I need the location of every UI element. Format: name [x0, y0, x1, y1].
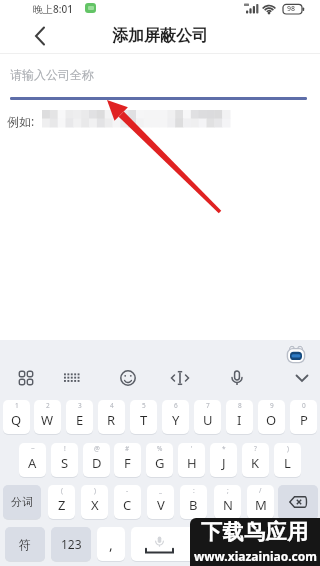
button[interactable]: @	[83, 443, 110, 477]
staticText: ?	[254, 444, 257, 453]
staticText: E	[76, 411, 84, 429]
staticText: :	[193, 486, 195, 495]
staticText: 6	[174, 401, 178, 410]
button[interactable]: :	[180, 485, 207, 519]
staticText: 0	[302, 401, 306, 410]
button[interactable]	[131, 527, 259, 561]
staticText: *	[222, 444, 226, 453]
staticText: A	[28, 454, 37, 472]
staticText: G	[155, 454, 165, 472]
staticText: -	[126, 486, 129, 495]
button[interactable]: 123	[51, 527, 91, 561]
button[interactable]: 3	[66, 400, 93, 434]
staticText: M	[255, 496, 267, 514]
staticText: 下载鸟应用	[201, 519, 309, 545]
button[interactable]	[10, 97, 307, 100]
staticText: '	[191, 444, 193, 453]
button[interactable]: %	[146, 443, 173, 477]
staticText: B	[189, 496, 198, 514]
button[interactable]: ;	[214, 485, 241, 519]
staticText: 5	[142, 401, 146, 410]
button[interactable]: (	[48, 485, 75, 519]
button[interactable]: ~	[19, 443, 46, 477]
button[interactable]: ?	[242, 443, 269, 477]
staticText: 3	[78, 401, 82, 410]
button[interactable]: 下载鸟应用	[190, 518, 320, 566]
staticText: Y	[172, 411, 180, 429]
button[interactable]: 1	[3, 400, 30, 434]
button[interactable]: )	[81, 485, 108, 519]
staticText: 请输入公司全称	[10, 67, 94, 82]
button[interactable]: ,	[97, 527, 125, 561]
staticText: K	[251, 454, 260, 472]
staticText: 2	[46, 401, 50, 410]
button[interactable]: 6	[162, 400, 189, 434]
staticText: P	[300, 411, 308, 429]
staticText: Z	[58, 496, 66, 514]
staticText: /	[259, 486, 262, 495]
staticText: 分词	[11, 495, 33, 509]
staticText: W	[41, 411, 54, 429]
staticText: 添加屏蔽公司	[112, 26, 208, 46]
staticText: 4	[110, 401, 114, 410]
staticText: #	[125, 444, 130, 453]
staticText: J	[222, 454, 226, 472]
staticText: www.xiazainiao.com	[194, 548, 317, 564]
button[interactable]: 2	[34, 400, 61, 434]
button[interactable]: _	[147, 485, 174, 519]
staticText: Q	[11, 411, 22, 429]
button[interactable]: )	[274, 443, 301, 477]
staticText: 123	[61, 536, 82, 552]
button[interactable]	[278, 485, 318, 519]
staticText: )	[287, 444, 289, 453]
staticText: _	[159, 486, 162, 495]
staticText: O	[266, 411, 277, 429]
staticText: T	[140, 411, 148, 429]
button[interactable]	[28, 24, 52, 48]
staticText: %	[157, 444, 163, 453]
staticText: H	[187, 454, 197, 472]
staticText: 8	[238, 401, 242, 410]
staticText: !	[64, 444, 66, 453]
button[interactable]: 0	[290, 400, 317, 434]
button[interactable]: -	[114, 485, 141, 519]
staticText: @	[94, 444, 100, 453]
staticText: 7	[206, 401, 210, 410]
staticText: F	[124, 454, 131, 472]
staticText: U	[203, 411, 213, 429]
staticText: I	[237, 411, 242, 429]
button[interactable]: 符	[5, 527, 45, 561]
button[interactable]: 9	[258, 400, 285, 434]
button[interactable]: 分词	[3, 485, 41, 519]
staticText: L	[284, 454, 291, 472]
staticText: X	[91, 496, 99, 514]
button[interactable]	[265, 527, 318, 561]
button[interactable]: *	[210, 443, 237, 477]
staticText: C	[123, 496, 132, 514]
staticText: ,	[109, 535, 113, 554]
staticText: N	[223, 496, 233, 514]
staticText: 1	[15, 401, 19, 410]
button[interactable]: #	[114, 443, 141, 477]
staticText: 98	[287, 4, 296, 14]
staticText: R	[107, 411, 116, 429]
staticText: S	[61, 454, 69, 472]
button[interactable]: '	[178, 443, 205, 477]
button[interactable]: 8	[226, 400, 253, 434]
staticText: D	[92, 454, 102, 472]
staticText: 晚上8:01	[33, 2, 73, 16]
staticText: V	[157, 496, 165, 514]
button[interactable]: 7	[194, 400, 221, 434]
button[interactable]: 4	[98, 400, 125, 434]
staticText: (	[61, 486, 63, 495]
staticText: 9	[270, 401, 274, 410]
button[interactable]	[287, 346, 305, 363]
button[interactable]: /	[247, 485, 274, 519]
button[interactable]: 5	[130, 400, 157, 434]
staticText: 例如:	[7, 113, 35, 129]
staticText: 符	[19, 537, 31, 552]
staticText: )	[94, 486, 96, 495]
button[interactable]: !	[51, 443, 78, 477]
staticText: ~	[31, 444, 35, 453]
staticText: ;	[227, 486, 229, 495]
